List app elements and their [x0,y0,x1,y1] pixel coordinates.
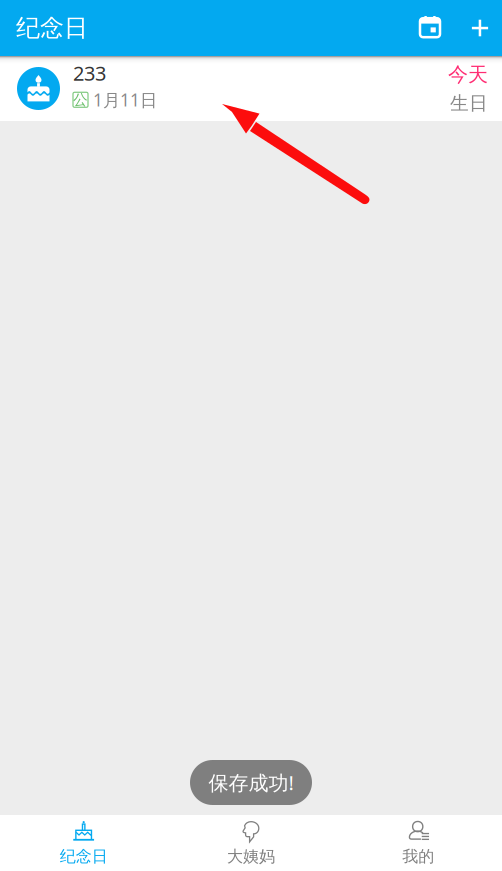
staticText: 今天 [448,62,488,87]
staticText: 我的 [402,847,434,866]
staticText: 纪念日 [16,13,88,43]
staticText: 233 [73,60,106,86]
button[interactable]: Calendar [404,0,458,56]
button[interactable]: 我的 [335,815,502,871]
button[interactable]: Add [458,0,502,56]
staticText: 公 [73,91,88,109]
button[interactable]: 纪念日 [0,815,167,871]
button[interactable]: 233 [0,56,502,121]
staticText: 纪念日 [60,847,108,866]
staticText: 生日 [450,92,488,115]
staticText: 保存成功! [208,769,293,796]
staticText: 大姨妈 [227,847,275,866]
staticText: 1月11日 [93,88,157,111]
button[interactable]: 大姨妈 [167,815,335,871]
